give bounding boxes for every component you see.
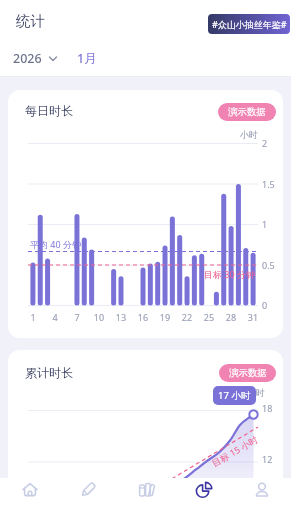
staticText: 演示数据 xyxy=(228,106,266,118)
staticText: 累计时长 xyxy=(25,365,73,380)
staticText: 13 xyxy=(109,311,133,323)
staticText: 12 xyxy=(262,453,273,465)
button[interactable] xyxy=(0,478,59,517)
staticText: 小时 xyxy=(247,387,265,398)
staticText: 2026 xyxy=(13,50,42,67)
staticText: 演示数据 xyxy=(229,367,267,379)
staticText: 17 小时 xyxy=(218,389,251,402)
staticText: 18 xyxy=(262,402,273,414)
staticText: 1.5 xyxy=(262,178,275,190)
staticText: 目标 30 分钟 xyxy=(204,268,255,280)
staticText: 19 xyxy=(153,311,177,323)
staticText: 2 xyxy=(262,137,268,149)
staticText: 25 xyxy=(197,311,221,323)
button[interactable]: 演示数据 xyxy=(219,364,276,382)
staticText: 22 xyxy=(175,311,199,323)
staticText: 16 xyxy=(131,311,155,323)
staticText: 7 xyxy=(65,311,89,323)
staticText: 10 xyxy=(87,311,111,323)
staticText: 31 xyxy=(241,311,265,323)
button[interactable]: #众山小抽丝年鉴# xyxy=(208,14,290,34)
staticText: 28 xyxy=(219,311,243,323)
staticText: 目标 15 小时 xyxy=(209,433,259,469)
button[interactable]: 2026 xyxy=(8,48,60,70)
staticText: 0.5 xyxy=(262,259,275,271)
button[interactable] xyxy=(233,478,291,517)
staticText: 统计 xyxy=(16,12,45,30)
button[interactable]: 演示数据 xyxy=(218,103,276,121)
button[interactable] xyxy=(175,478,233,517)
button[interactable]: 1月 xyxy=(70,48,100,70)
staticText: 每日时长 xyxy=(25,103,73,118)
staticText: 4 xyxy=(43,311,67,323)
button[interactable] xyxy=(59,478,117,517)
staticText: 平均 40 分钟 xyxy=(30,238,81,250)
button[interactable] xyxy=(117,478,175,517)
staticText: 0 xyxy=(262,299,268,311)
staticText: 1 xyxy=(21,311,45,323)
staticText: 小时 xyxy=(240,129,258,140)
staticText: 1月 xyxy=(77,50,97,67)
staticText: #众山小抽丝年鉴# xyxy=(212,18,287,30)
staticText: 1 xyxy=(262,218,268,230)
